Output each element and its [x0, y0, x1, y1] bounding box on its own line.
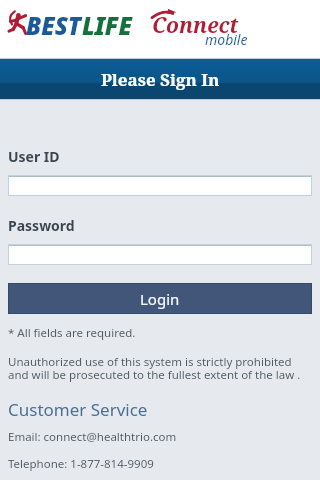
staticText: * All fields are required. — [8, 325, 136, 341]
button[interactable] — [8, 175, 312, 196]
button[interactable]: Telephone: 1-877-814-9909 — [8, 456, 154, 472]
button[interactable] — [8, 244, 312, 265]
button[interactable]: Email: connect@healthtrio.com — [8, 429, 177, 445]
staticText: Connect — [152, 11, 239, 40]
other: BestLife Connect mobile — [8, 9, 260, 49]
staticText: Unauthorized use of this system is stric… — [8, 354, 312, 383]
staticText: Please Sign In — [101, 68, 220, 91]
staticText: Login — [140, 289, 180, 309]
staticText: LIFE — [82, 9, 133, 42]
staticText: Password — [8, 216, 75, 235]
button[interactable]: Login — [8, 283, 312, 314]
button[interactable]: Customer Service — [8, 398, 148, 421]
staticText: User ID — [8, 147, 60, 166]
staticText: BEST — [26, 9, 82, 42]
staticText: mobile — [205, 30, 248, 49]
